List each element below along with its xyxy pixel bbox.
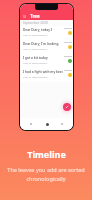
button[interactable]: Add entry <box>63 103 71 111</box>
staticText: I felt so good about it. <box>23 75 48 78</box>
staticText: I had a fight with my best fr <box>23 70 63 74</box>
button[interactable]: I had a fight with my best fr <box>20 68 73 82</box>
button[interactable]: Dear Diary, I'm looking That <box>20 40 73 54</box>
staticText: Tree <box>30 13 40 19</box>
staticText: I felt so good about it. <box>23 61 48 64</box>
button[interactable]: Dear Diary, today I learned a <box>20 26 73 40</box>
staticText: I got a bit today <box>23 56 48 60</box>
staticText: Dear Diary, I'm looking That <box>23 42 63 46</box>
button[interactable]: Tab <box>58 120 66 128</box>
button[interactable]: Tab <box>27 120 35 128</box>
button[interactable]: I got a bit today <box>20 54 73 68</box>
staticText: September 2020 <box>23 21 48 25</box>
staticText: I felt so good about it. <box>23 47 48 50</box>
staticText: The leaves you add are sorted chronologi… <box>7 166 85 183</box>
staticText: I felt so good about it. <box>23 33 48 36</box>
button[interactable]: Tab <box>43 120 51 128</box>
staticText: Timeline <box>27 148 66 160</box>
staticText: Dear Diary, today I learned a <box>23 28 63 32</box>
